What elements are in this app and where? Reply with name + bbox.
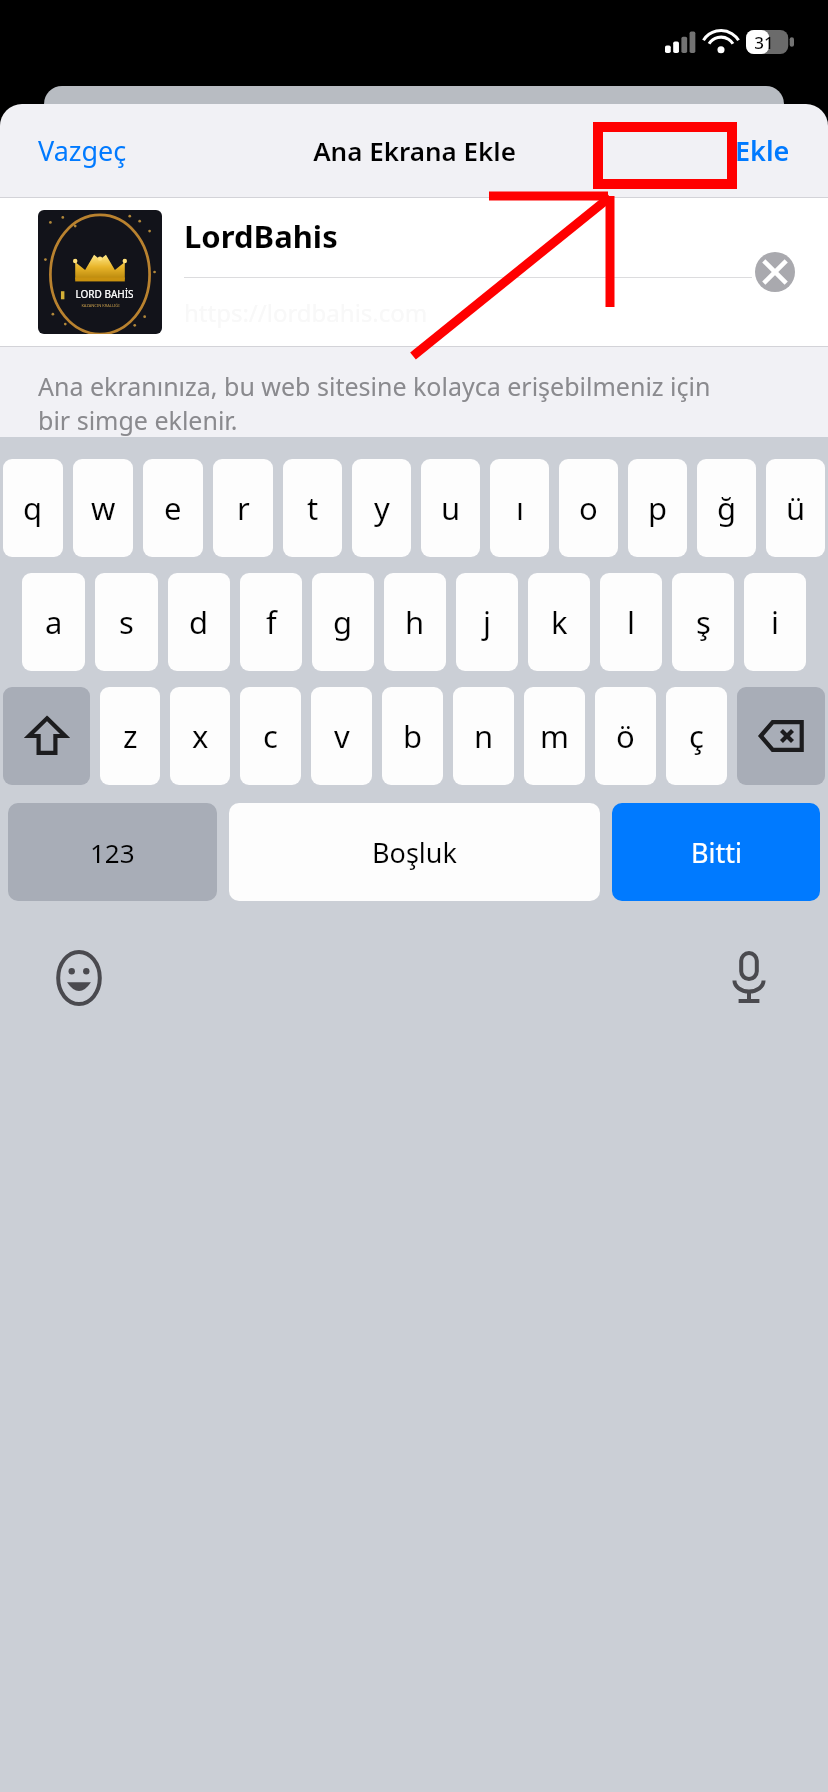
staticText: i — [771, 601, 779, 643]
staticText: Boşluk — [372, 834, 457, 871]
staticText: f — [266, 601, 277, 643]
staticText: LORD BAHİS — [75, 287, 134, 301]
staticText: s — [119, 601, 134, 643]
button[interactable]: Boşluk — [229, 803, 600, 901]
button[interactable]: i — [744, 573, 806, 671]
staticText: x — [192, 715, 209, 757]
staticText: y — [374, 487, 390, 529]
staticText: ş — [696, 601, 711, 643]
button[interactable]: Dikte — [718, 947, 780, 1009]
staticText: KAZANCIN KRALLIĞI — [81, 303, 120, 308]
button[interactable]: f — [240, 573, 302, 671]
button[interactable]: ö — [595, 687, 656, 785]
button[interactable]: v — [311, 687, 372, 785]
button[interactable]: ü — [766, 459, 825, 557]
staticText: ö — [616, 715, 635, 757]
button[interactable]: t — [283, 459, 342, 557]
staticText: n — [474, 715, 494, 757]
button[interactable]: Emoji — [48, 947, 110, 1009]
button[interactable]: Bitti — [612, 803, 820, 901]
button[interactable]: j — [456, 573, 518, 671]
staticText: r — [237, 487, 250, 529]
staticText: g — [333, 601, 353, 643]
button[interactable]: Ekle — [697, 116, 828, 185]
staticText: d — [189, 601, 209, 643]
button[interactable]: a — [22, 573, 85, 671]
staticText: 31 — [754, 31, 774, 54]
button[interactable]: Temizle — [752, 249, 798, 295]
staticText: ü — [786, 487, 806, 529]
button[interactable]: s — [95, 573, 158, 671]
staticText: m — [540, 715, 569, 757]
button[interactable]: u — [421, 459, 480, 557]
staticText: h — [405, 601, 425, 643]
button[interactable]: Vazgeç — [0, 116, 165, 185]
button[interactable]: g — [312, 573, 374, 671]
button[interactable]: n — [453, 687, 514, 785]
staticText: t — [307, 487, 319, 529]
staticText: p — [648, 487, 668, 529]
button[interactable]: e — [143, 459, 203, 557]
staticText: b — [403, 715, 423, 757]
button[interactable]: k — [528, 573, 590, 671]
staticText: o — [579, 487, 598, 529]
staticText: z — [123, 715, 138, 757]
staticText: q — [23, 487, 43, 529]
button[interactable]: b — [382, 687, 443, 785]
staticText: Ana ekranınıza, bu web sitesine kolayca … — [38, 369, 718, 437]
button[interactable]: 123 — [8, 803, 217, 901]
button[interactable]: Sil — [737, 687, 825, 785]
staticText: l — [627, 601, 635, 643]
staticText: k — [551, 601, 568, 643]
button[interactable]: l — [600, 573, 662, 671]
button[interactable]: ç — [666, 687, 727, 785]
staticText: c — [263, 715, 278, 757]
staticText: u — [441, 487, 461, 529]
staticText: ğ — [717, 487, 737, 529]
button[interactable]: z — [100, 687, 160, 785]
staticText: v — [334, 715, 350, 757]
staticText: w — [91, 487, 116, 529]
button[interactable]: ı — [490, 459, 549, 557]
staticText: a — [45, 601, 63, 643]
button[interactable]: w — [73, 459, 133, 557]
button[interactable]: ğ — [697, 459, 756, 557]
staticText: Vazgeç — [38, 132, 127, 169]
button[interactable]: c — [240, 687, 301, 785]
staticText: Ana Ekrana Ekle — [313, 133, 516, 168]
button[interactable]: o — [559, 459, 618, 557]
button[interactable]: h — [384, 573, 446, 671]
button[interactable]: x — [170, 687, 230, 785]
button[interactable]: d — [168, 573, 230, 671]
staticText: Bitti — [691, 834, 742, 871]
button[interactable]: q — [3, 459, 63, 557]
staticText: LordBahis — [184, 215, 338, 257]
button[interactable]: ş — [672, 573, 734, 671]
staticText: ç — [689, 715, 704, 757]
staticText: e — [164, 487, 182, 529]
button[interactable]: Shift — [3, 687, 90, 785]
staticText: j — [483, 601, 491, 643]
button[interactable]: y — [352, 459, 411, 557]
staticText: 123 — [90, 835, 135, 870]
button[interactable]: r — [213, 459, 273, 557]
staticText: ı — [516, 487, 524, 529]
button[interactable]: p — [628, 459, 687, 557]
button[interactable]: m — [524, 687, 585, 785]
staticText: Ekle — [735, 132, 790, 169]
